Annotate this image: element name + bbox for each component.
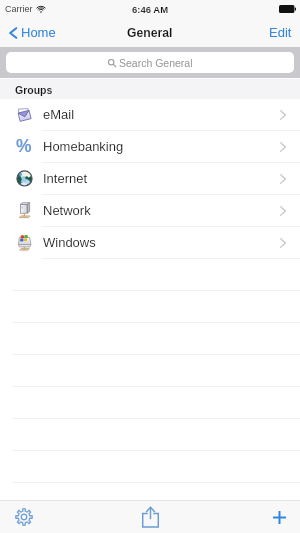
staticText: Carrier [5, 4, 33, 14]
button[interactable]: eMail [0, 99, 300, 130]
staticText: Network [43, 203, 280, 218]
staticText: Windows [43, 235, 280, 250]
button[interactable]: % [0, 131, 300, 162]
staticText: Groups [15, 84, 53, 96]
staticText: General [127, 26, 173, 40]
staticText: Internet [43, 171, 280, 186]
staticText: Search General [119, 57, 193, 69]
button[interactable]: Edit [261, 21, 300, 44]
button[interactable]: Share [100, 501, 200, 533]
staticText: 6:46 AM [132, 4, 169, 15]
staticText: Homebanking [43, 139, 280, 154]
button[interactable]: Windows [0, 227, 300, 258]
staticText: eMail [43, 107, 280, 122]
staticText: % [16, 136, 32, 156]
staticText: Edit [269, 25, 292, 40]
button[interactable]: Internet [0, 163, 300, 194]
button[interactable]: Search General [6, 52, 294, 73]
button[interactable]: Add [200, 501, 300, 533]
button[interactable]: Settings [0, 501, 100, 533]
staticText: Home [21, 25, 56, 40]
button[interactable]: Home [0, 21, 64, 44]
button[interactable]: Network [0, 195, 300, 226]
